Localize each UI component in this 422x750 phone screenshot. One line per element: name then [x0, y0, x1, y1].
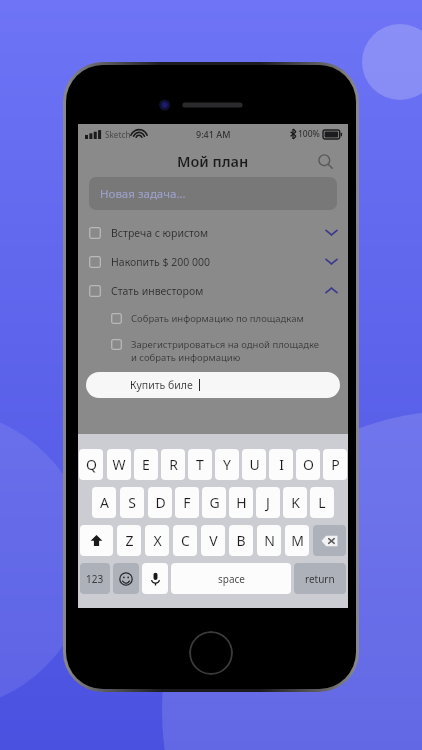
button[interactable]: R [161, 449, 185, 480]
staticText: S [128, 493, 136, 512]
staticText: W [112, 455, 126, 474]
staticText: H [236, 493, 247, 512]
staticText: P [331, 455, 340, 474]
staticText: K [291, 493, 300, 512]
button[interactable]: B [229, 525, 253, 556]
staticText: return [305, 572, 335, 586]
button[interactable]: V [201, 525, 225, 556]
button[interactable]: N [257, 525, 281, 556]
button[interactable]: G [202, 487, 226, 518]
button[interactable]: T [188, 449, 212, 480]
staticText: I [279, 455, 284, 474]
button[interactable]: Стать инвестором [78, 276, 348, 305]
staticText: 100% [298, 128, 320, 140]
button[interactable]: Зарегистрироваться на одной площадке и с… [78, 331, 348, 370]
button[interactable]: Search [312, 148, 338, 174]
button[interactable]: Z [117, 525, 141, 556]
button[interactable]: Home [189, 631, 233, 675]
button[interactable]: Numbers [80, 563, 110, 594]
staticText: R [169, 455, 178, 474]
staticText: L [318, 493, 326, 512]
staticText: Q [86, 455, 97, 474]
staticText: Новая задача... [100, 186, 186, 202]
button[interactable]: C [173, 525, 197, 556]
button[interactable]: M [285, 525, 309, 556]
staticText: G [209, 493, 220, 512]
button[interactable]: Backspace [313, 525, 346, 556]
button[interactable]: Emoji [113, 563, 139, 594]
staticText: J [266, 493, 270, 512]
button[interactable]: A [92, 487, 116, 518]
button[interactable]: W [107, 449, 131, 480]
button[interactable]: S [120, 487, 144, 518]
button[interactable]: J [256, 487, 280, 518]
button[interactable]: Собрать информацию по площадкам [78, 305, 348, 331]
staticText: Z [125, 531, 134, 550]
button[interactable]: Купить биле [86, 372, 340, 398]
staticText: M [291, 531, 304, 550]
button[interactable]: Накопить $ 200 000 [78, 247, 348, 276]
button[interactable]: Новая задача... [89, 177, 337, 210]
staticText: D [155, 493, 166, 512]
staticText: E [142, 455, 150, 474]
staticText: B [236, 531, 246, 550]
button[interactable]: return [294, 563, 346, 594]
button[interactable]: U [242, 449, 266, 480]
button[interactable]: F [175, 487, 199, 518]
staticText: F [183, 493, 191, 512]
button[interactable]: E [134, 449, 158, 480]
staticText: Мой план [177, 151, 249, 171]
staticText: 123 [86, 572, 104, 586]
staticText: V [209, 531, 218, 550]
button[interactable]: Dictation [142, 563, 168, 594]
staticText: A [100, 493, 109, 512]
staticText: U [249, 455, 260, 474]
button[interactable]: Shift [80, 525, 113, 556]
staticText: T [196, 455, 204, 474]
staticText: O [303, 455, 314, 474]
staticText: Купить биле [130, 378, 193, 392]
button[interactable]: Встреча с юристом [78, 218, 348, 247]
staticText: Sketch [105, 129, 131, 140]
button[interactable]: D [148, 487, 172, 518]
staticText: Встреча с юристом [111, 226, 209, 240]
staticText: Накопить $ 200 000 [111, 255, 210, 269]
button[interactable]: X [145, 525, 169, 556]
button[interactable]: P [323, 449, 347, 480]
staticText: Зарегистрироваться на одной площадке и с… [131, 338, 320, 364]
button[interactable]: Y [215, 449, 239, 480]
staticText: Собрать информацию по площадкам [131, 312, 304, 325]
button[interactable]: O [296, 449, 320, 480]
button[interactable]: H [229, 487, 253, 518]
staticText: 9:41 AM [196, 128, 231, 140]
button[interactable]: I [269, 449, 293, 480]
staticText: Стать инвестором [111, 284, 204, 298]
button[interactable]: L [310, 487, 334, 518]
staticText: N [264, 531, 275, 550]
staticText: X [153, 531, 162, 550]
button[interactable]: Q [79, 449, 103, 480]
staticText: Y [223, 455, 231, 474]
staticText: C [181, 531, 190, 550]
button[interactable]: K [283, 487, 307, 518]
button[interactable]: space [171, 563, 291, 594]
staticText: space [218, 572, 245, 586]
